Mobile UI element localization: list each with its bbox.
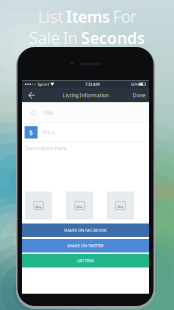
staticText: Title (43, 109, 53, 116)
staticText: List (38, 6, 63, 27)
staticText: Sprint (37, 82, 49, 87)
button[interactable]: SHARE ON TWITTER (22, 239, 149, 252)
staticText: LIST ITEM (77, 258, 94, 263)
button[interactable]: Back (22, 88, 42, 102)
staticText: Description Here (25, 145, 66, 152)
staticText: Seconds (81, 27, 145, 48)
staticText: $ (29, 128, 33, 137)
staticText: Price (42, 129, 54, 136)
staticText: Items (66, 6, 110, 27)
staticText: 66% (131, 82, 138, 87)
staticText: SHARE ON FACEBOOK (64, 228, 107, 233)
button[interactable]: Done (129, 88, 149, 102)
button[interactable]: SHARE ON FACEBOOK (22, 223, 149, 237)
staticText: Sale (29, 27, 60, 48)
staticText: Done (132, 92, 145, 99)
staticText: For (113, 6, 136, 27)
staticText: In (63, 27, 78, 48)
button[interactable]: LIST ITEM (22, 254, 149, 267)
staticText: Listing Information (62, 92, 108, 99)
staticText: 7:32 AM (85, 82, 100, 87)
staticText: SHARE ON TWITTER (67, 243, 104, 248)
